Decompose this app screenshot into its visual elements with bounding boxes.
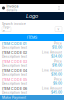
button[interactable]: Make Payment [0,95,64,100]
staticText: Line Amount [42,87,62,90]
staticText: ITEM CODE 05 [2,77,27,82]
staticText: v [57,27,59,31]
staticText: $45.00 [51,90,62,94]
staticText: ITEM CODE 04 [2,68,27,73]
staticText: Description text [2,46,27,49]
staticText: Logo [26,13,38,19]
staticText: ITEMS [27,35,37,40]
staticText: Make Payment [2,96,26,99]
staticText: Type [3,26,10,33]
staticText: ITEM CODE 02 [2,50,27,55]
staticText: Line Amount [42,51,62,54]
staticText: $36.00 [51,72,62,76]
staticText: Price [54,42,62,45]
staticText: Description text [2,55,27,58]
staticText: ITEM CODE 03 [2,59,27,64]
staticText: $18.00 [52,63,62,67]
staticText: Line Amount [42,69,62,72]
button[interactable]: More options [56,4,62,12]
staticText: Price [54,78,62,81]
staticText: Description text [2,82,27,85]
staticText: Description text [2,91,27,94]
staticText: Price [54,60,62,63]
staticText: Search invoice [2,22,26,26]
staticText: Invoice [6,4,18,8]
staticText: ITEM CODE 06 [2,86,27,91]
staticText: ITEM CODE 01 [2,41,26,46]
staticText: Description text [2,64,27,67]
staticText: details [6,8,17,12]
staticText: $12.00 [52,45,62,49]
staticText: Description text [2,73,27,76]
staticText: $24.00 [51,54,62,58]
staticText: $9.00 [53,81,62,85]
